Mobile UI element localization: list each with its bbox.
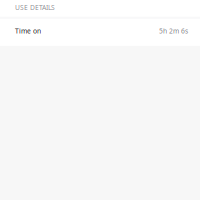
staticText: 5h 2m 6s xyxy=(159,26,188,35)
staticText: USE DETAILS xyxy=(15,3,55,12)
staticText: Time on xyxy=(15,26,41,35)
button[interactable]: Time on xyxy=(0,19,200,46)
